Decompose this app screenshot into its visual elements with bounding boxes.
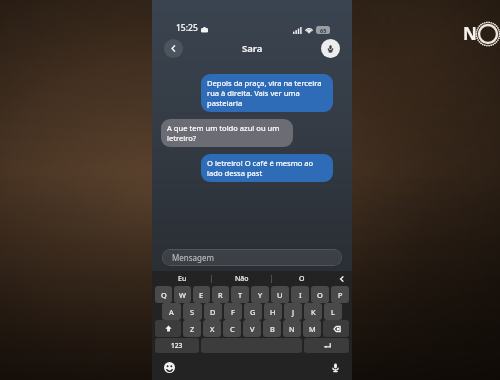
staticText: P — [338, 290, 343, 300]
button[interactable]: F — [224, 303, 242, 320]
staticText: J — [292, 307, 295, 317]
button[interactable]: Y — [251, 286, 269, 303]
button[interactable]: B — [263, 320, 281, 337]
button[interactable]: X — [203, 320, 221, 337]
staticText: R — [218, 290, 223, 300]
staticText: Sara — [242, 42, 263, 55]
staticText: G — [250, 307, 256, 317]
button[interactable]: Depois da praça, vira na terceira rua à … — [201, 74, 333, 112]
staticText: K — [311, 307, 316, 317]
staticText: 65 — [320, 27, 327, 34]
button[interactable]: C — [223, 320, 241, 337]
staticText: O — [317, 290, 323, 300]
button[interactable]: 123 — [155, 338, 199, 353]
button[interactable]: W — [174, 286, 191, 303]
button[interactable]: A que tem um toldo azul ou um letreiro? — [161, 119, 293, 147]
button[interactable]: Backspace — [323, 320, 349, 337]
staticText: W — [179, 290, 186, 300]
staticText: 15:25 — [176, 22, 198, 34]
button[interactable]: Collapse suggestions — [332, 271, 352, 286]
button[interactable]: Q — [155, 286, 172, 303]
button[interactable]: A — [162, 303, 181, 320]
staticText: L — [331, 307, 335, 317]
staticText: M — [309, 324, 316, 334]
button[interactable]: O — [311, 286, 329, 303]
staticText: Eu — [178, 274, 187, 284]
staticText: F — [231, 307, 235, 317]
button[interactable]: Enter — [304, 338, 349, 353]
staticText: Mensagem — [172, 252, 214, 263]
staticText: Depois da praça, vira na terceira rua à … — [207, 78, 327, 108]
button[interactable]: J — [284, 303, 302, 320]
staticText: Q — [161, 290, 167, 300]
button[interactable]: E — [193, 286, 210, 303]
staticText: A — [169, 307, 174, 317]
staticText: N — [289, 324, 295, 334]
staticText: O letreiro! O café é mesmo ao lado dessa… — [207, 158, 327, 178]
staticText: B — [270, 324, 275, 334]
button[interactable]: Shift — [155, 320, 181, 337]
button[interactable]: N — [283, 320, 301, 337]
button[interactable]: U — [271, 286, 289, 303]
staticText: S — [190, 307, 195, 317]
button[interactable]: P — [331, 286, 349, 303]
staticText: Y — [258, 290, 263, 300]
button[interactable]: O letreiro! O café é mesmo ao lado dessa… — [201, 154, 333, 182]
button[interactable]: G — [244, 303, 262, 320]
button[interactable]: D — [204, 303, 222, 320]
button[interactable]: T — [231, 286, 249, 303]
staticText: Z — [190, 324, 195, 334]
button[interactable]: Back — [164, 39, 183, 58]
button[interactable]: Eu — [152, 271, 212, 286]
button[interactable]: Não — [212, 271, 272, 286]
staticText: U — [277, 290, 283, 300]
staticText: A que tem um toldo azul ou um letreiro? — [167, 123, 287, 143]
staticText: C — [230, 324, 235, 334]
button[interactable]: V — [243, 320, 261, 337]
button[interactable]: Z — [183, 320, 201, 337]
button[interactable]: Emoji — [162, 360, 176, 374]
staticText: V — [250, 324, 255, 334]
staticText: T — [238, 290, 243, 300]
button[interactable]: L — [324, 303, 342, 320]
button[interactable]: Mensagem — [162, 249, 342, 266]
staticText: 123 — [171, 341, 183, 350]
staticText: I — [299, 290, 302, 300]
button[interactable]: S — [183, 303, 202, 320]
button[interactable]: H — [264, 303, 282, 320]
staticText: D — [210, 307, 216, 317]
button[interactable]: M — [303, 320, 321, 337]
staticText: Não — [235, 274, 249, 284]
button[interactable]: O — [272, 271, 332, 286]
staticText: E — [199, 290, 204, 300]
staticText: X — [210, 324, 215, 334]
button[interactable]: Voice message — [321, 39, 340, 58]
staticText: O — [299, 274, 305, 284]
button[interactable]: Voice input — [328, 360, 342, 374]
staticText: N — [463, 22, 477, 45]
button[interactable]: I — [291, 286, 309, 303]
staticText: H — [270, 307, 276, 317]
button[interactable]: K — [304, 303, 322, 320]
button[interactable]: R — [212, 286, 229, 303]
